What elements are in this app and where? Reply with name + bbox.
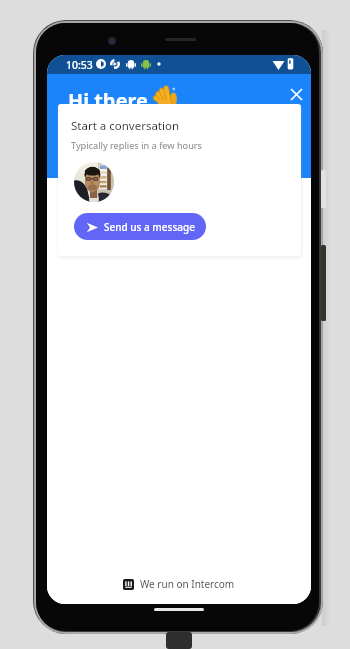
staticText: Typically replies in a few hours xyxy=(71,139,203,152)
staticText: Send us a message xyxy=(104,220,195,234)
staticText: 10:53 xyxy=(66,58,93,72)
staticText: Hi there xyxy=(68,87,148,114)
button[interactable]: We run on Intercom xyxy=(123,577,235,591)
staticText: Start a conversation xyxy=(71,118,180,134)
staticText: We run on Intercom xyxy=(140,577,235,591)
button[interactable]: Close xyxy=(285,83,307,105)
button[interactable]: Send us a message xyxy=(74,213,206,240)
